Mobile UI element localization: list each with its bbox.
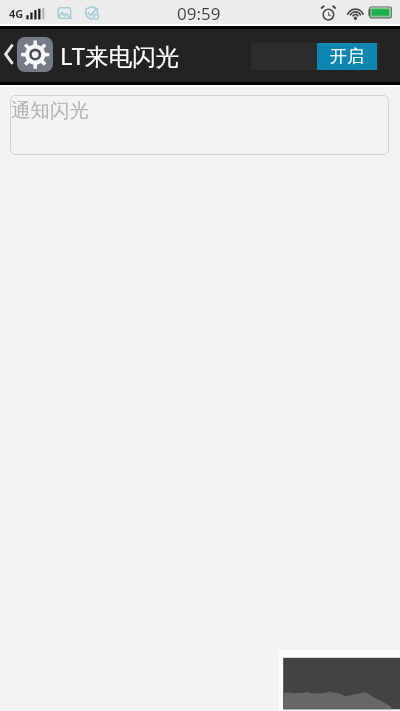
- button[interactable]: 开启: [251, 43, 379, 70]
- staticText: 通知闪光: [11, 98, 89, 123]
- button[interactable]: Back: [0, 29, 18, 82]
- button[interactable]: App settings: [17, 37, 53, 72]
- staticText: 4G: [9, 6, 24, 21]
- staticText: 开启: [330, 46, 364, 67]
- button[interactable]: 通知闪光: [10, 95, 389, 155]
- staticText: LT来电闪光: [60, 40, 179, 72]
- staticText: 09:59: [177, 2, 221, 25]
